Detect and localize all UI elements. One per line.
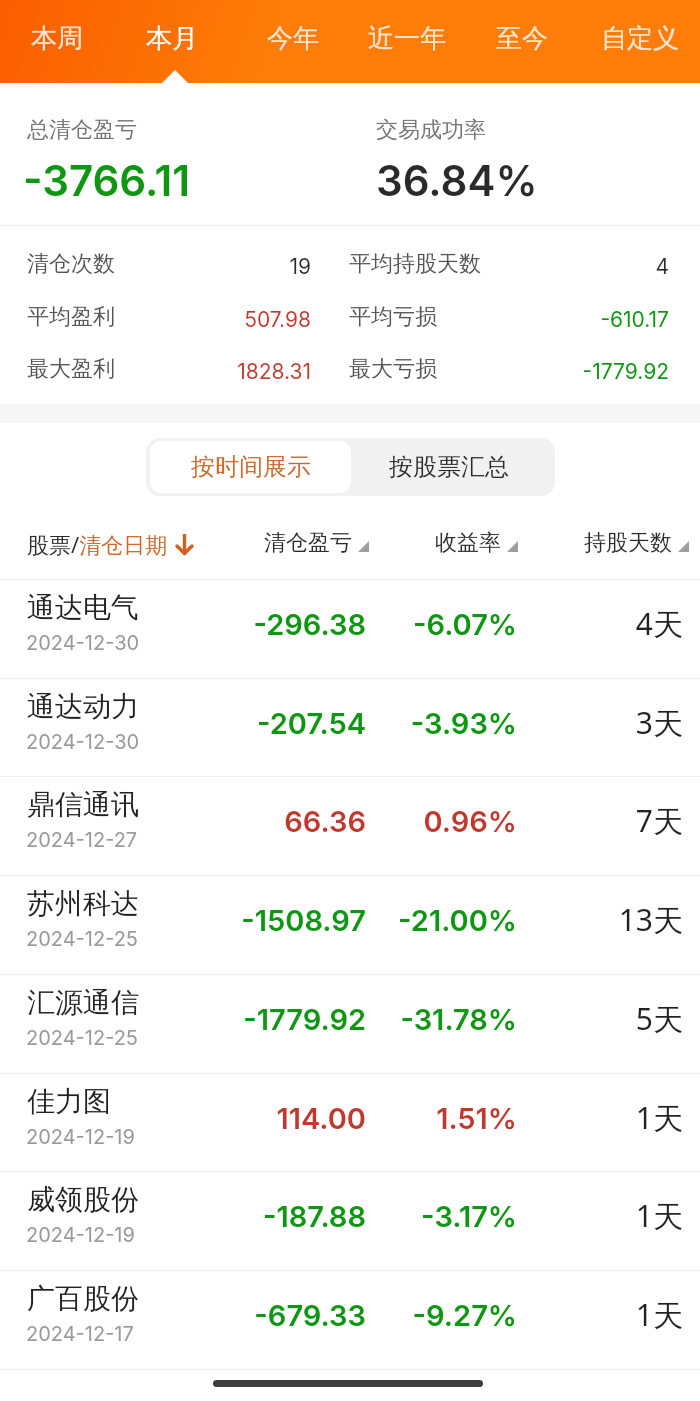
staticText: -6.07% bbox=[217, 607, 517, 642]
staticText: 2024-12-19 bbox=[26, 1125, 135, 1149]
button[interactable]: Sort by exit date descending bbox=[175, 531, 195, 557]
staticText: 威领股份 bbox=[27, 1182, 139, 1217]
staticText: 1天 bbox=[383, 1195, 683, 1236]
staticText: 通达动力 bbox=[27, 689, 139, 724]
button[interactable]: 股票/清仓日期 bbox=[27, 529, 168, 559]
staticText: 持股天数 bbox=[472, 529, 672, 557]
staticText: 平均亏损 bbox=[349, 303, 437, 331]
staticText: 2024-12-30 bbox=[26, 730, 140, 754]
other: Sort bbox=[678, 541, 689, 552]
staticText: 佳力图 bbox=[27, 1084, 111, 1119]
staticText: 2024-12-19 bbox=[26, 1223, 135, 1247]
other: Sort bbox=[358, 541, 369, 552]
button[interactable]: 本月 bbox=[112, 0, 232, 83]
staticText: 汇源通信 bbox=[27, 985, 139, 1020]
staticText: 1828.31 bbox=[11, 359, 311, 384]
staticText: 1天 bbox=[383, 1097, 683, 1138]
staticText: 3天 bbox=[383, 702, 683, 743]
staticText: 今年 bbox=[267, 22, 319, 55]
button[interactable]: 通达电气 bbox=[0, 580, 700, 677]
button[interactable]: 汇源通信 bbox=[0, 975, 700, 1072]
staticText: -679.33 bbox=[66, 1298, 366, 1333]
staticText: 1.51% bbox=[217, 1101, 517, 1136]
staticText: 股票/清仓日期 bbox=[27, 529, 168, 559]
staticText: 36.84% bbox=[376, 155, 538, 206]
staticText: 平均盈利 bbox=[27, 303, 115, 331]
staticText: 总清仓盈亏 bbox=[27, 116, 137, 144]
staticText: -31.78% bbox=[217, 1002, 517, 1037]
staticText: 本周 bbox=[31, 22, 83, 55]
button[interactable]: 按时间展示 bbox=[150, 441, 351, 493]
staticText: -9.27% bbox=[217, 1298, 517, 1333]
button[interactable]: 通达动力 bbox=[0, 679, 700, 776]
staticText: 2024-12-25 bbox=[26, 1026, 139, 1050]
staticText: 2024-12-27 bbox=[26, 828, 138, 852]
button[interactable]: 威领股份 bbox=[0, 1172, 700, 1269]
staticText: 2024-12-25 bbox=[26, 927, 139, 951]
button[interactable]: 按股票汇总 bbox=[347, 438, 551, 496]
staticText: 苏州科达 bbox=[27, 886, 139, 921]
staticText: 交易成功率 bbox=[376, 116, 486, 144]
staticText: 自定义 bbox=[601, 22, 679, 55]
staticText: 近一年 bbox=[368, 22, 446, 55]
button[interactable]: 至今 bbox=[462, 0, 582, 83]
button[interactable]: 近一年 bbox=[347, 0, 467, 83]
staticText: 7天 bbox=[383, 800, 683, 841]
staticText: -1779.92 bbox=[369, 359, 669, 384]
staticText: 按时间展示 bbox=[191, 452, 311, 482]
button[interactable]: 鼎信通讯 bbox=[0, 777, 700, 874]
staticText: 按股票汇总 bbox=[389, 452, 509, 482]
button[interactable]: 自定义 bbox=[580, 0, 700, 83]
staticText: -1779.92 bbox=[66, 1002, 366, 1037]
staticText: 4天 bbox=[383, 603, 683, 644]
staticText: -1508.97 bbox=[66, 903, 366, 938]
staticText: 鼎信通讯 bbox=[27, 787, 139, 822]
other: Sort bbox=[507, 541, 518, 552]
staticText: 清仓次数 bbox=[27, 250, 115, 278]
button[interactable]: 苏州科达 bbox=[0, 876, 700, 973]
staticText: 广百股份 bbox=[27, 1281, 139, 1316]
staticText: 通达电气 bbox=[27, 590, 139, 625]
staticText: 2024-12-17 bbox=[26, 1322, 134, 1346]
staticText: -610.17 bbox=[369, 307, 669, 332]
staticText: 2024-12-30 bbox=[26, 631, 140, 655]
staticText: 13天 bbox=[383, 899, 683, 940]
button[interactable]: 本周 bbox=[0, 0, 117, 83]
staticText: 至今 bbox=[496, 22, 548, 55]
staticText: 1天 bbox=[383, 1294, 683, 1335]
button[interactable]: 广百股份 bbox=[0, 1271, 700, 1368]
staticText: 114.00 bbox=[66, 1101, 366, 1136]
staticText: 507.98 bbox=[11, 307, 311, 332]
staticText: -3.17% bbox=[217, 1199, 517, 1234]
staticText: -207.54 bbox=[66, 706, 366, 741]
staticText: 最大盈利 bbox=[27, 355, 115, 383]
button[interactable]: 收益率 bbox=[301, 529, 501, 557]
staticText: 最大亏损 bbox=[349, 355, 437, 383]
staticText: 清仓盈亏 bbox=[152, 529, 352, 557]
staticText: 5天 bbox=[383, 998, 683, 1039]
staticText: -3766.11 bbox=[23, 155, 191, 206]
button[interactable]: 今年 bbox=[233, 0, 353, 83]
button[interactable]: 持股天数 bbox=[472, 529, 672, 557]
staticText: -187.88 bbox=[66, 1199, 366, 1234]
button[interactable]: 佳力图 bbox=[0, 1074, 700, 1171]
staticText: -296.38 bbox=[66, 607, 366, 642]
staticText: 平均持股天数 bbox=[349, 250, 481, 278]
button[interactable]: 清仓盈亏 bbox=[152, 529, 352, 557]
staticText: 19 bbox=[11, 254, 311, 279]
staticText: 66.36 bbox=[66, 804, 366, 839]
staticText: 0.96% bbox=[217, 804, 517, 839]
staticText: -21.00% bbox=[217, 903, 517, 938]
staticText: 本月 bbox=[146, 22, 198, 55]
staticText: -3.93% bbox=[217, 706, 517, 741]
staticText: 收益率 bbox=[301, 529, 501, 557]
staticText: 4 bbox=[369, 254, 669, 279]
